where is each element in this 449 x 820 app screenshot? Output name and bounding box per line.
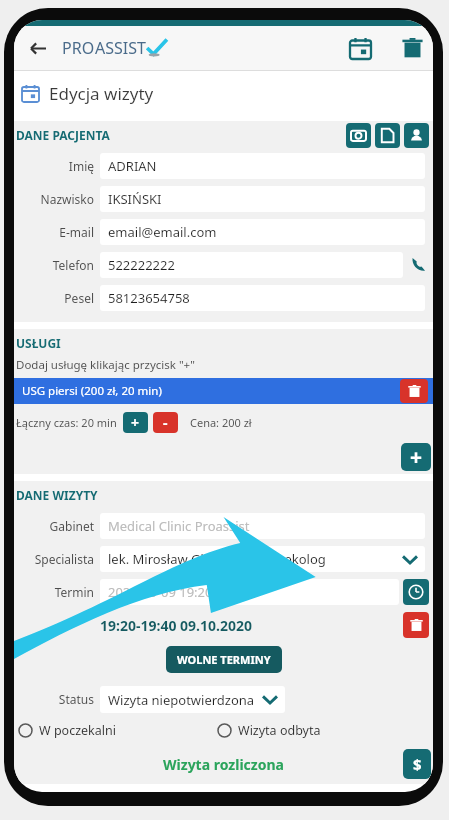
button[interactable]: Pick time	[403, 579, 429, 605]
button[interactable]: WOLNE TERMINY	[166, 646, 282, 673]
button[interactable]: Calendar	[343, 31, 377, 65]
staticText: Cena: 200 zł	[190, 415, 252, 430]
staticText: Nazwisko	[18, 191, 94, 207]
staticText: -	[163, 413, 168, 432]
staticText: Specialista	[18, 551, 94, 567]
staticText: DANE WIZYTY	[16, 487, 98, 503]
button[interactable]: Contacts	[404, 123, 429, 148]
button[interactable]: W poczekalni	[16, 720, 118, 741]
button[interactable]: Increase time	[123, 412, 148, 433]
staticText: Łączny czas: 20 min	[16, 415, 117, 430]
button[interactable]: ADRIAN	[100, 153, 425, 179]
staticText: DANE PACJENTA	[16, 127, 110, 143]
button[interactable]: 522222222	[100, 252, 403, 278]
button[interactable]: Call	[407, 254, 429, 276]
staticText: ASSIST	[95, 37, 146, 59]
button[interactable]: Medical Clinic Proassist	[100, 513, 425, 539]
button[interactable]: IKSIŃSKI	[100, 186, 425, 212]
button[interactable]: Wizyta niepotwierdzona	[100, 686, 285, 713]
button[interactable]: Decrease time	[153, 412, 178, 433]
staticText: +	[410, 443, 423, 471]
staticText: IKSIŃSKI	[108, 190, 162, 208]
staticText: 522222222	[108, 256, 175, 274]
button[interactable]: 58123654758	[100, 285, 425, 311]
staticText: 19:20-19:40 09.10.2020	[100, 616, 252, 635]
staticText: Dodaj usługę klikając przycisk "+"	[16, 357, 195, 373]
staticText: WOLNE TERMINY	[177, 652, 271, 667]
staticText: Medical Clinic Proassist	[108, 517, 250, 535]
button[interactable]: Add service	[401, 443, 431, 471]
button[interactable]: Wizyta rozliczona	[157, 749, 290, 780]
staticText: 2020-10-09 19:20	[108, 583, 213, 601]
staticText: Edycja wizyty	[49, 82, 154, 105]
button[interactable]: Remove service	[400, 379, 428, 403]
button[interactable]: Payment	[403, 749, 431, 779]
staticText: Gabinet	[18, 518, 94, 534]
button[interactable]: Document	[375, 123, 400, 148]
staticText: Wizyta rozliczona	[163, 755, 284, 774]
staticText: 58123654758	[108, 289, 190, 307]
staticText: Wizyta odbyta	[238, 722, 321, 739]
staticText: Pesel	[18, 290, 94, 306]
staticText: $	[413, 754, 422, 774]
staticText: ADRIAN	[108, 157, 157, 175]
staticText: PRO	[62, 37, 95, 59]
staticText: W poczekalni	[39, 722, 116, 739]
staticText: USG piersi (200 zł, 20 min)	[22, 383, 162, 399]
button[interactable]: Wizyta odbyta	[215, 720, 323, 741]
staticText: Wizyta niepotwierdzona	[108, 691, 255, 709]
staticText: USŁUGI	[16, 335, 61, 351]
button[interactable]: Delete term	[403, 612, 429, 638]
button[interactable]: email@email.com	[100, 219, 425, 245]
staticText: Termin	[18, 584, 94, 600]
staticText: Telefon	[18, 257, 94, 273]
button[interactable]: Camera	[346, 123, 371, 148]
staticText: E-mail	[18, 224, 94, 240]
staticText: Status	[18, 691, 94, 707]
staticText: +	[131, 413, 140, 432]
staticText: lek. Mirosław Głogowski - ginekolog	[108, 550, 326, 568]
staticText: Imię	[18, 158, 94, 174]
button[interactable]: 2020-10-09 19:20	[100, 579, 399, 605]
button[interactable]: lek. Mirosław Głogowski - ginekolog	[100, 546, 425, 572]
button[interactable]: Delete	[395, 31, 429, 65]
button[interactable]: Back	[20, 31, 54, 65]
staticText: email@email.com	[108, 223, 217, 241]
